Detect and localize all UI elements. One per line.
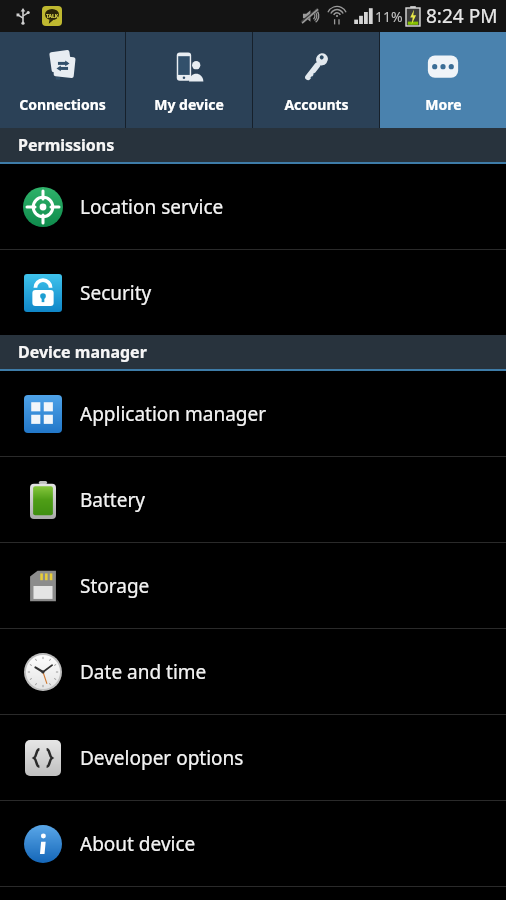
button[interactable]: Accounts (253, 32, 379, 128)
button[interactable]: Application manager (0, 371, 506, 456)
staticText: 8:24 PM (426, 3, 498, 29)
staticText: Location service (80, 194, 224, 220)
staticText: Device manager (18, 341, 147, 363)
staticText: Application manager (80, 401, 267, 427)
staticText: 11% (375, 7, 403, 26)
staticText: My device (154, 95, 224, 114)
button[interactable]: Developer options (0, 715, 506, 800)
button[interactable]: More (380, 32, 506, 128)
staticText: Storage (80, 573, 150, 599)
button[interactable]: Date and time (0, 629, 506, 714)
staticText: About device (80, 831, 196, 857)
staticText: Accounts (284, 95, 349, 114)
button[interactable]: Storage (0, 543, 506, 628)
button[interactable]: About device (0, 801, 506, 886)
button[interactable]: Battery (0, 457, 506, 542)
staticText: Date and time (80, 659, 207, 685)
staticText: Security (80, 280, 152, 306)
staticText: Permissions (18, 134, 115, 156)
staticText: Developer options (80, 745, 244, 771)
button[interactable]: My device (126, 32, 252, 128)
staticText: TALK (46, 13, 59, 20)
staticText: Battery (80, 487, 145, 513)
staticText: Connections (19, 95, 106, 114)
button[interactable]: Security (0, 250, 506, 335)
button[interactable]: Connections (0, 32, 125, 128)
staticText: More (425, 95, 462, 114)
button[interactable]: Location service (0, 164, 506, 249)
